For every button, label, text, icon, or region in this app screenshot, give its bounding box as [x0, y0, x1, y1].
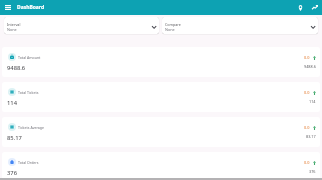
staticText: Total Tickets — [18, 90, 39, 95]
staticText: Interval — [7, 22, 21, 27]
staticText: 114 — [309, 99, 316, 104]
staticText: 85.17 — [7, 134, 22, 142]
staticText: 376 — [309, 169, 316, 174]
staticText: Compare — [165, 22, 181, 27]
button[interactable]: Open navigation menu — [3, 3, 13, 13]
staticText: Tickets Average — [18, 125, 45, 130]
button[interactable]: Interval — [4, 17, 159, 34]
button[interactable]: Location — [296, 3, 305, 12]
staticText: 9488.6 — [7, 64, 26, 72]
staticText: 376 — [7, 169, 17, 177]
staticText: Total Amount — [18, 55, 41, 60]
staticText: 114 — [7, 99, 17, 107]
staticText: 83.17 — [306, 134, 316, 139]
staticText: DashBoard — [17, 4, 45, 11]
staticText: None — [7, 27, 17, 32]
button[interactable]: Total Tickets — [2, 82, 320, 112]
button[interactable]: Compare — [162, 17, 318, 34]
staticText: 0.0 — [304, 160, 310, 165]
button[interactable]: Total Orders — [2, 152, 320, 180]
staticText: Total Orders — [18, 160, 39, 165]
staticText: 0.0 — [304, 90, 310, 95]
staticText: 0.0 — [304, 55, 310, 60]
staticText: 0.0 — [304, 125, 310, 130]
button[interactable]: Tickets Average — [2, 117, 320, 147]
button[interactable]: Total Amount — [2, 47, 320, 77]
staticText: 9488.6 — [304, 64, 316, 69]
button[interactable]: Trends — [310, 3, 319, 12]
staticText: None — [165, 27, 175, 32]
